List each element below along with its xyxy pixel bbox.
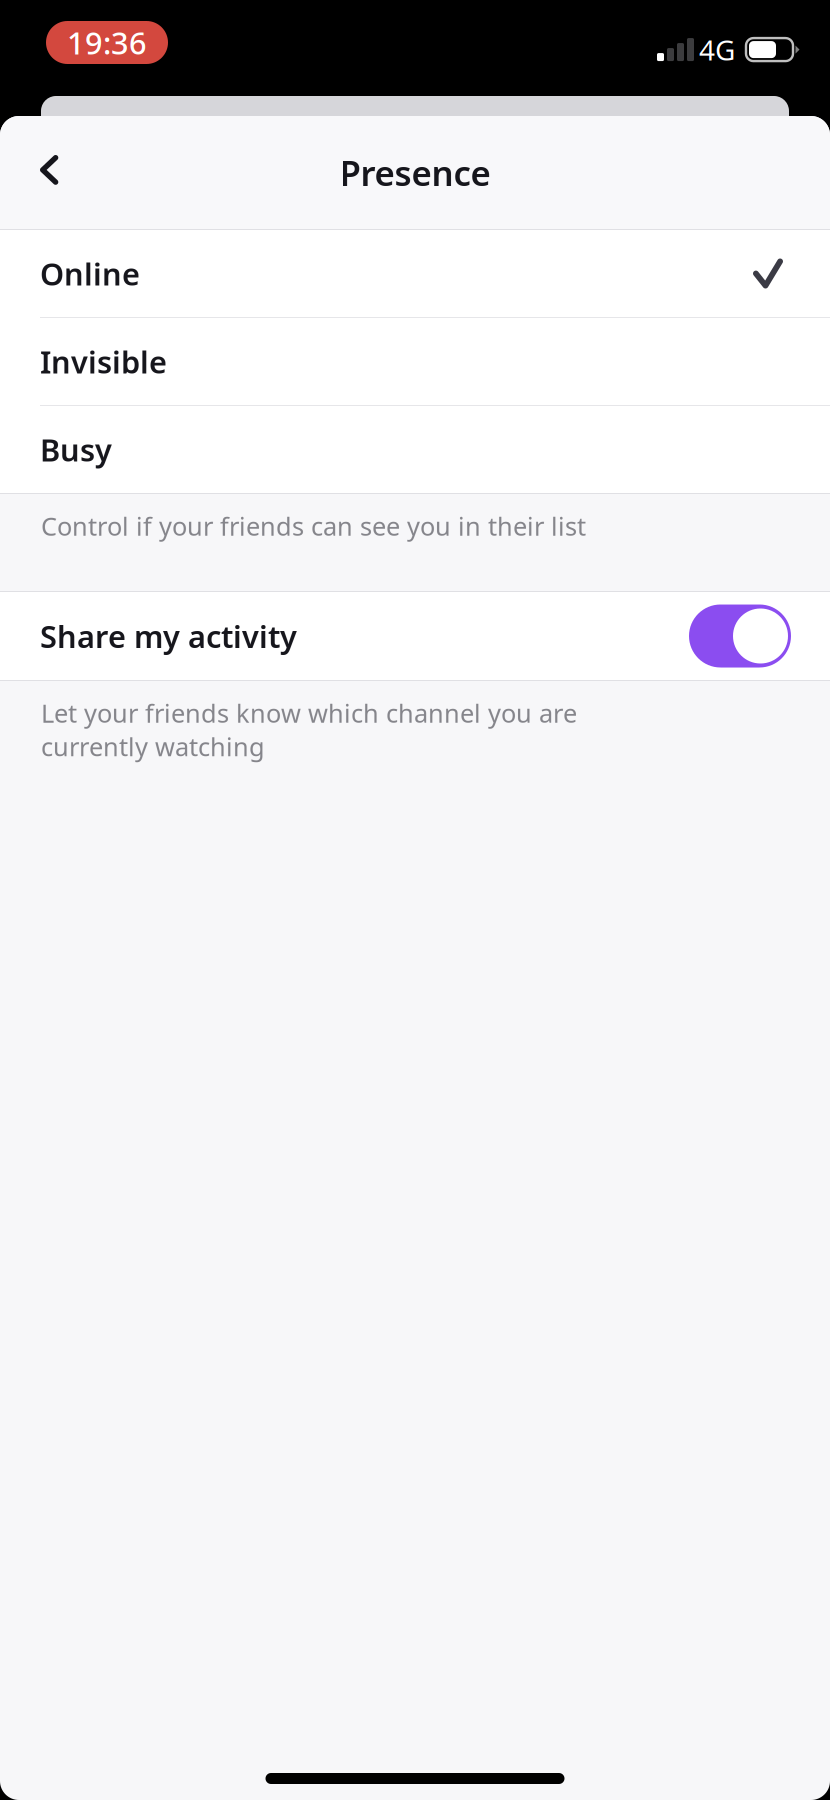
- staticText: Presence: [339, 149, 490, 195]
- button[interactable]: Busy: [0, 406, 830, 493]
- staticText: Online: [40, 253, 140, 294]
- staticText: Let your friends know which channel you …: [41, 696, 577, 763]
- staticText: Invisible: [40, 341, 167, 382]
- staticText: Share my activity: [40, 616, 297, 656]
- staticText: Busy: [40, 429, 112, 470]
- button[interactable]: Invisible: [0, 318, 830, 405]
- button[interactable]: Back: [0, 122, 98, 223]
- staticText: 19:36: [67, 22, 147, 63]
- staticText: Control if your friends can see you in t…: [41, 509, 586, 543]
- button[interactable]: Share my activity: [0, 592, 830, 680]
- staticText: 4G: [699, 31, 735, 68]
- button[interactable]: Online: [0, 230, 830, 317]
